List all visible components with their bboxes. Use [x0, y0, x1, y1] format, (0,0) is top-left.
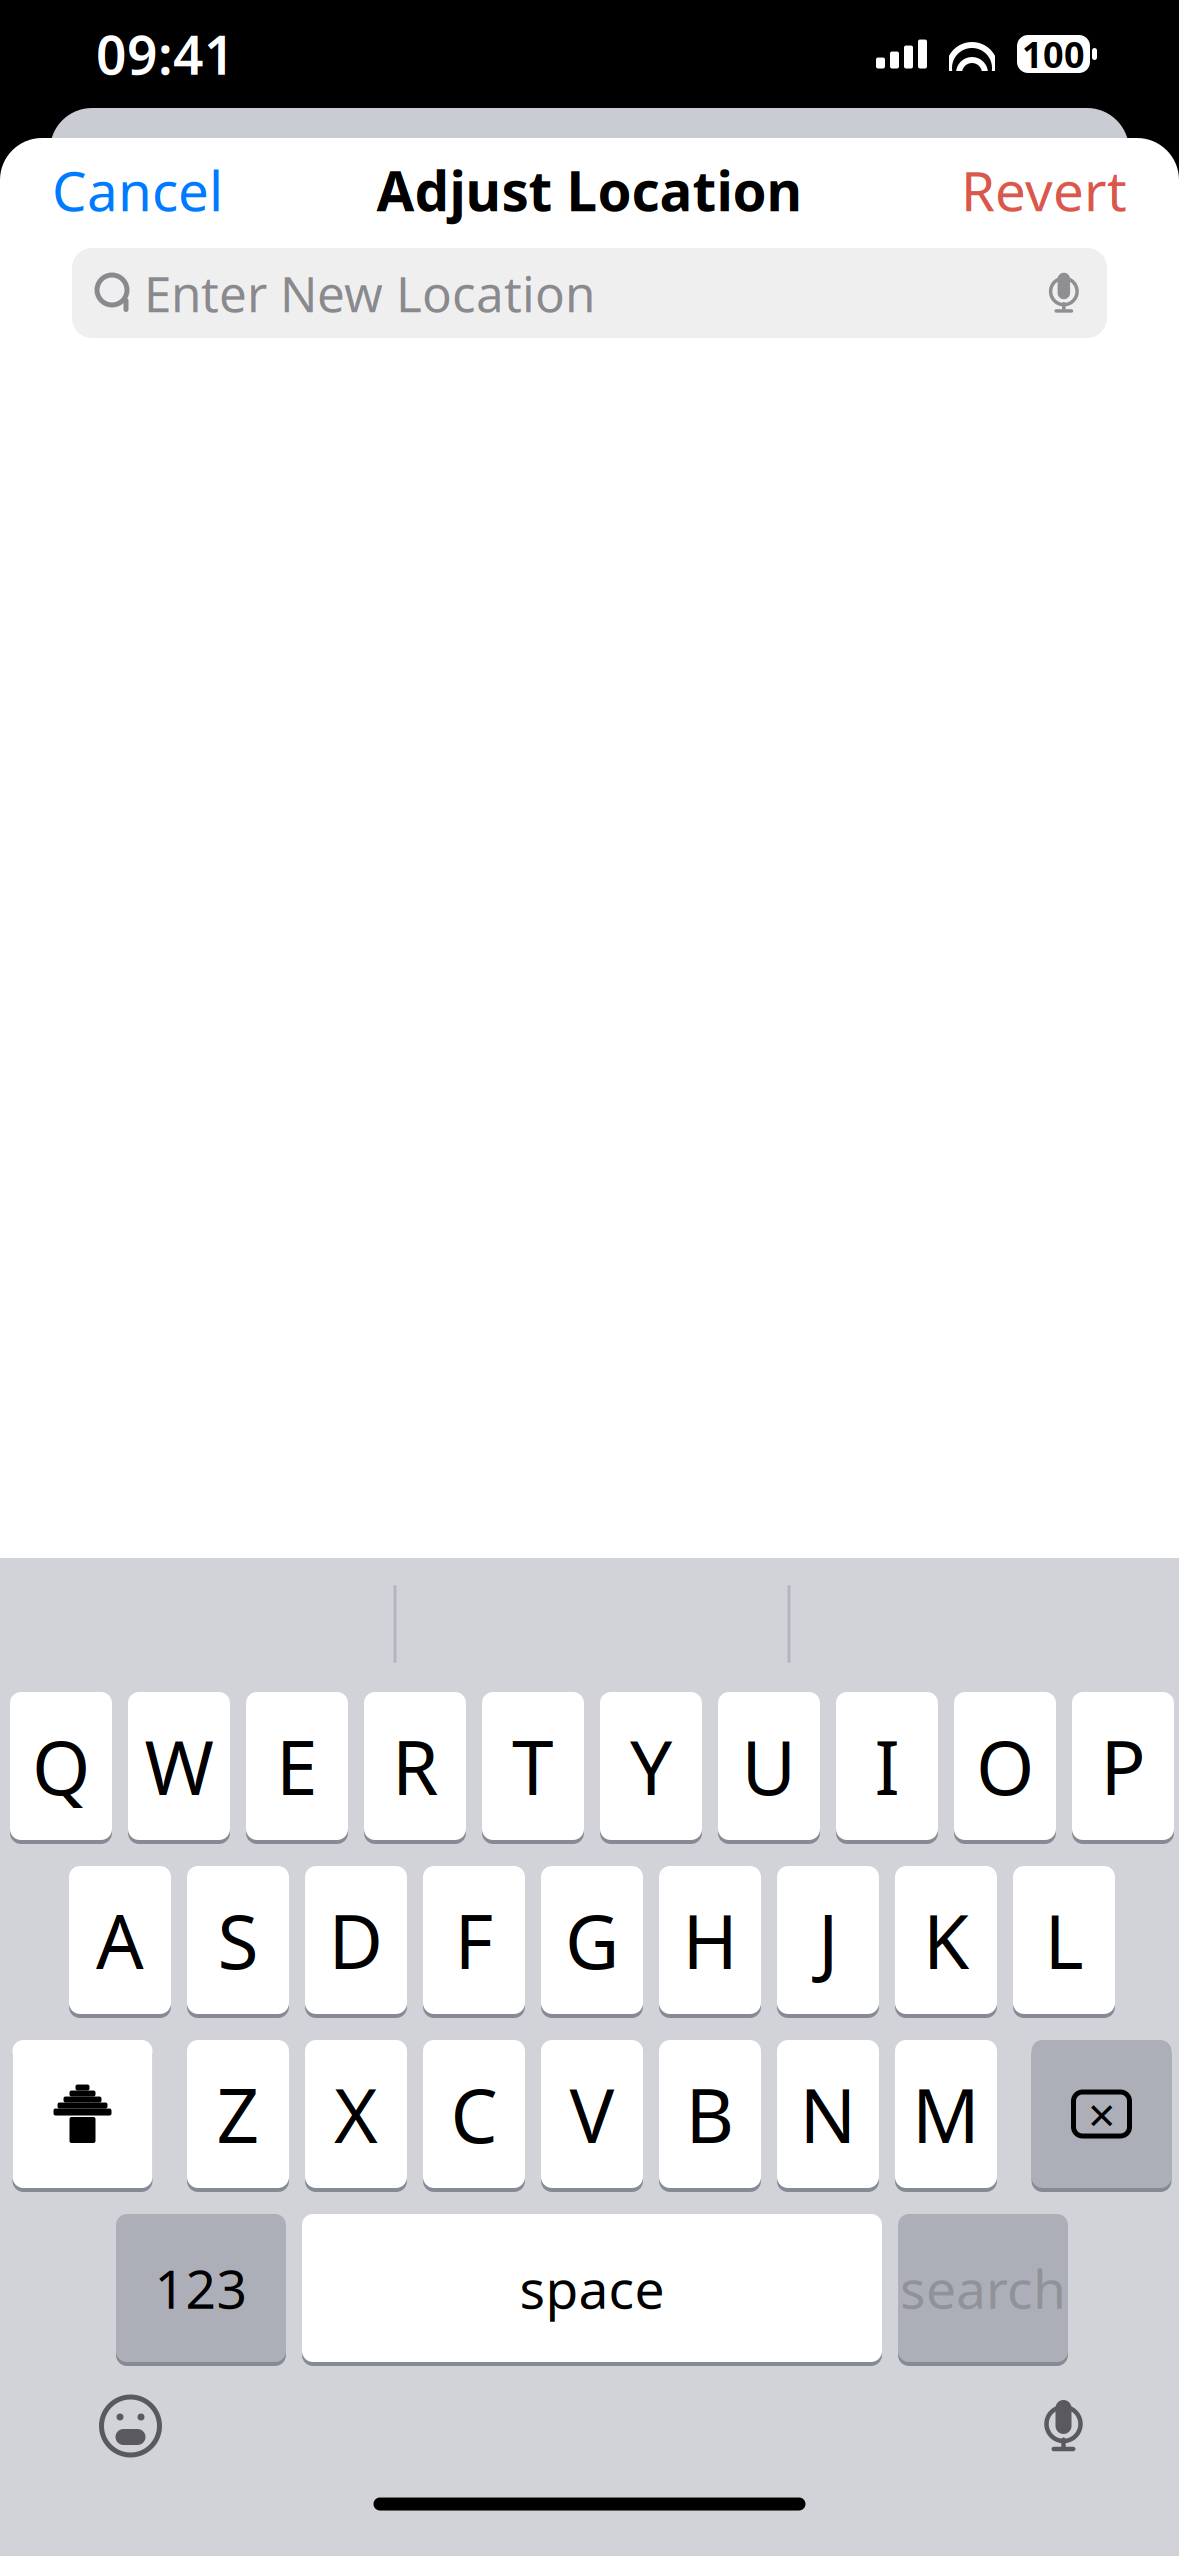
- staticText: N: [799, 2064, 856, 2164]
- button[interactable]: E: [246, 1690, 348, 1842]
- button[interactable]: D: [305, 1864, 407, 2016]
- button[interactable]: search: [898, 2212, 1068, 2364]
- button[interactable]: Shift: [12, 2038, 152, 2190]
- button[interactable]: M: [895, 2038, 997, 2190]
- button[interactable]: N: [777, 2038, 879, 2190]
- staticText: Cancel: [52, 154, 223, 226]
- button[interactable]: W: [128, 1690, 230, 1842]
- button[interactable]: Z: [187, 2038, 289, 2190]
- staticText: Z: [216, 2064, 259, 2164]
- staticText: W: [144, 1716, 213, 1816]
- button[interactable]: J: [777, 1864, 879, 2016]
- staticText: O: [976, 1716, 1034, 1816]
- button[interactable]: Enter New Location: [72, 248, 1107, 338]
- button[interactable]: F: [423, 1864, 525, 2016]
- staticText: R: [392, 1716, 438, 1816]
- button[interactable]: L: [1013, 1864, 1115, 2016]
- button[interactable]: B: [659, 2038, 761, 2190]
- button[interactable]: O: [954, 1690, 1056, 1842]
- button[interactable]: I: [836, 1690, 938, 1842]
- button[interactable]: G: [541, 1864, 643, 2016]
- button[interactable]: Delete: [1031, 2038, 1171, 2190]
- button[interactable]: V: [541, 2038, 643, 2190]
- staticText: Y: [630, 1716, 672, 1816]
- staticText: B: [685, 2064, 734, 2164]
- button[interactable]: A: [69, 1864, 171, 2016]
- button[interactable]: 123: [116, 2212, 286, 2364]
- staticText: space: [519, 2253, 664, 2323]
- button[interactable]: Dictation: [1019, 2389, 1107, 2463]
- button[interactable]: Y: [600, 1690, 702, 1842]
- staticText: U: [741, 1716, 796, 1816]
- staticText: S: [217, 1890, 258, 1990]
- button[interactable]: T: [482, 1690, 584, 1842]
- staticText: T: [512, 1716, 554, 1816]
- staticText: M: [912, 2064, 980, 2164]
- staticText: V: [569, 2064, 614, 2164]
- staticText: P: [1100, 1716, 1145, 1816]
- staticText: F: [454, 1890, 493, 1990]
- staticText: X: [334, 2064, 378, 2164]
- staticText: 09:41: [96, 19, 235, 89]
- button[interactable]: X: [305, 2038, 407, 2190]
- staticText: G: [565, 1890, 619, 1990]
- button[interactable]: S: [187, 1864, 289, 2016]
- staticText: L: [1044, 1890, 1083, 1990]
- staticText: I: [874, 1716, 899, 1816]
- staticText: search: [900, 2253, 1066, 2323]
- button[interactable]: H: [659, 1864, 761, 2016]
- staticText: 100: [1022, 30, 1085, 78]
- staticText: Q: [32, 1716, 90, 1816]
- button[interactable]: P: [1072, 1690, 1174, 1842]
- button[interactable]: U: [718, 1690, 820, 1842]
- button[interactable]: Q: [10, 1690, 112, 1842]
- staticText: H: [682, 1890, 737, 1990]
- staticText: 123: [154, 2253, 247, 2323]
- button[interactable]: Revert: [941, 140, 1147, 240]
- button[interactable]: R: [364, 1690, 466, 1842]
- staticText: Adjust Location: [376, 154, 802, 226]
- staticText: D: [328, 1890, 383, 1990]
- button[interactable]: Emoji: [76, 2380, 184, 2472]
- button[interactable]: C: [423, 2038, 525, 2190]
- staticText: C: [450, 2064, 497, 2164]
- staticText: Revert: [961, 154, 1127, 226]
- button[interactable]: space: [302, 2212, 882, 2364]
- staticText: ×: [1088, 2082, 1115, 2146]
- button[interactable]: Cancel: [32, 140, 243, 240]
- staticText: E: [276, 1716, 318, 1816]
- staticText: J: [818, 1890, 838, 1990]
- staticText: K: [923, 1890, 969, 1990]
- button[interactable]: K: [895, 1864, 997, 2016]
- staticText: Enter New Location: [144, 260, 595, 326]
- staticText: A: [96, 1890, 144, 1990]
